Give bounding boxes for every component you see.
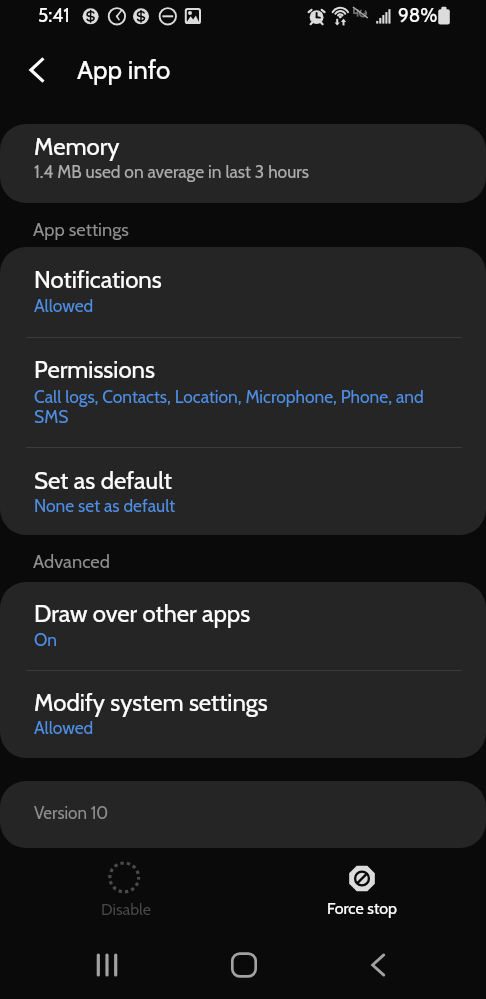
staticText: Advanced bbox=[33, 550, 110, 572]
button[interactable]: Recent apps bbox=[62, 935, 152, 995]
button[interactable]: Notifications bbox=[0, 247, 486, 337]
staticText: Set as default bbox=[34, 466, 172, 495]
button[interactable]: Permissions bbox=[0, 337, 486, 446]
staticText: Memory bbox=[34, 132, 120, 161]
button[interactable]: Navigate up bbox=[14, 47, 60, 93]
staticText: Allowed bbox=[34, 717, 94, 738]
staticText: Allowed bbox=[34, 295, 94, 316]
staticText: Call logs, Contacts, Location, Microphon… bbox=[34, 386, 430, 427]
staticText: 1.4 MB used on average in last 3 hours bbox=[34, 161, 309, 182]
button[interactable]: Modify system settings bbox=[0, 670, 486, 758]
button[interactable]: Back bbox=[334, 935, 424, 995]
staticText: Force stop bbox=[327, 899, 397, 918]
button[interactable]: Disable bbox=[26, 856, 225, 932]
button[interactable]: Home bbox=[199, 935, 289, 995]
staticText: App settings bbox=[33, 218, 129, 240]
staticText: Permissions bbox=[34, 355, 155, 384]
button[interactable]: Draw over other apps bbox=[0, 582, 486, 671]
staticText: App info bbox=[77, 54, 171, 86]
button[interactable]: Force stop bbox=[262, 856, 461, 932]
staticText: On bbox=[34, 629, 57, 650]
staticText: Modify system settings bbox=[34, 688, 268, 717]
button[interactable]: Set as default bbox=[0, 447, 486, 536]
staticText: None set as default bbox=[34, 495, 176, 516]
staticText: 98% bbox=[398, 4, 438, 27]
staticText: Notifications bbox=[34, 265, 162, 294]
staticText: Disable bbox=[101, 900, 151, 919]
staticText: Draw over other apps bbox=[34, 599, 251, 628]
staticText: Version 10 bbox=[34, 803, 109, 824]
staticText: 5:41 bbox=[38, 4, 70, 27]
